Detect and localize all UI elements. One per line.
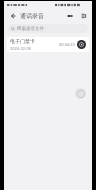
staticText: 搜索录音文件 (17, 26, 44, 32)
staticText: 电子门禁卡 (10, 38, 35, 44)
button[interactable]: 搜索录音文件 (8, 24, 88, 33)
staticText: 00:04:23 (59, 42, 75, 47)
button[interactable]: Sort (64, 10, 75, 21)
staticText: 通话录音 (20, 12, 44, 20)
button[interactable]: New recording (75, 88, 86, 99)
button[interactable]: More options (78, 10, 89, 21)
button[interactable]: Back (7, 10, 18, 21)
button[interactable]: Play recording (77, 40, 86, 49)
button[interactable]: 电子门禁卡 (7, 37, 89, 52)
staticText: 2024-02-08 (10, 46, 31, 51)
